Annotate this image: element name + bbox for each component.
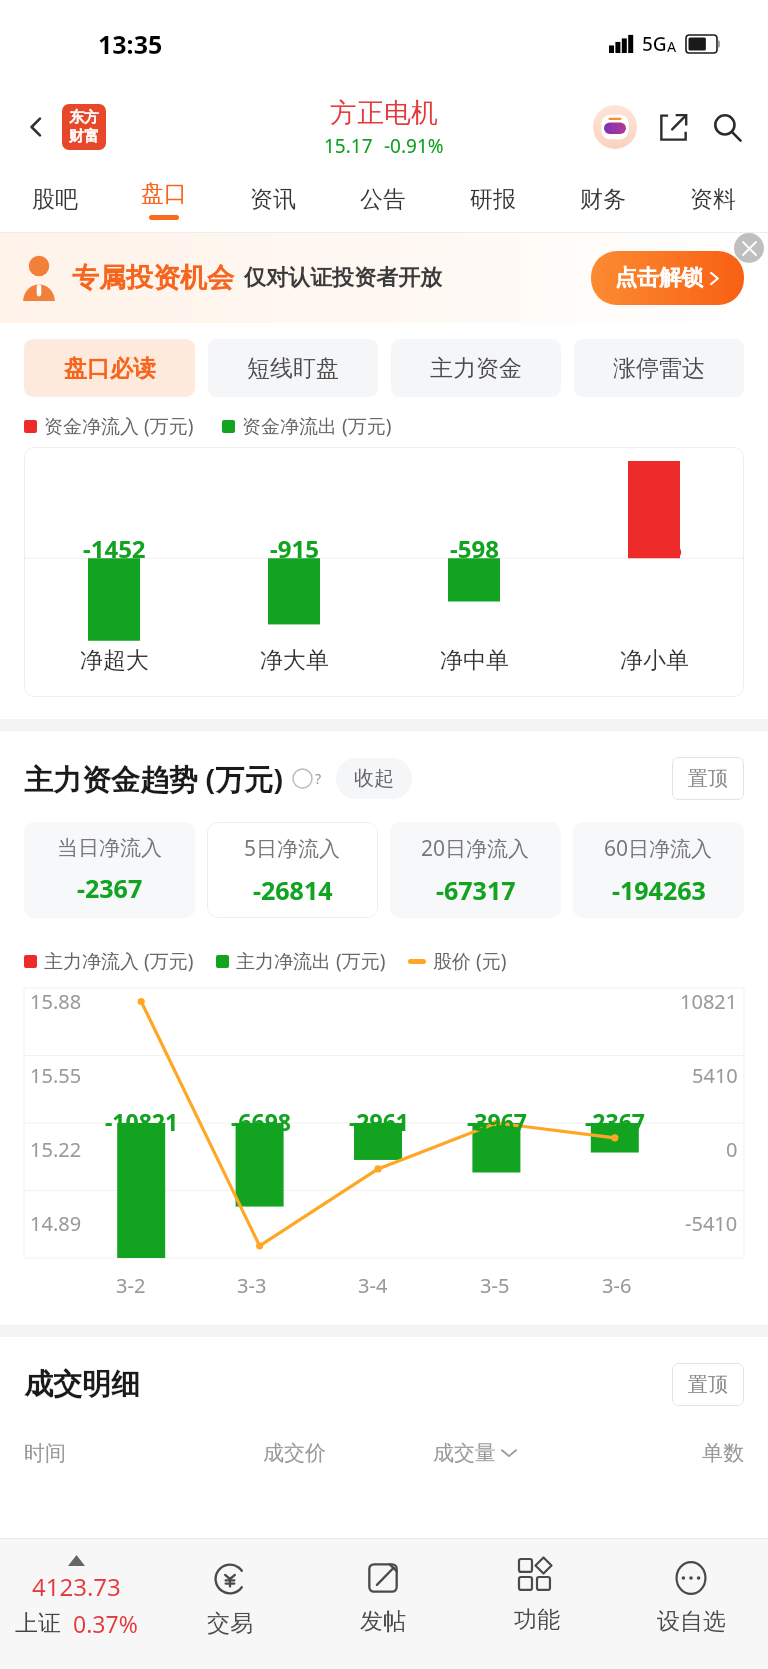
staticText: -2367 (77, 871, 143, 905)
staticText: 2966 (627, 532, 682, 565)
staticText: -26814 (253, 873, 333, 907)
staticText: 3-2 (116, 1272, 146, 1299)
staticText: 3-6 (602, 1272, 632, 1299)
staticText: 14.89 (30, 1210, 82, 1237)
button[interactable]: 点击解锁 (591, 251, 744, 305)
staticText: 上证 (15, 1609, 61, 1638)
staticText: 净超大 (80, 646, 149, 675)
staticText: 财富 (69, 127, 99, 146)
button[interactable]: East Money Home (62, 104, 106, 150)
staticText: 置顶 (688, 766, 728, 791)
button[interactable]: 置顶 (672, 1363, 744, 1406)
staticText: 发帖 (360, 1607, 406, 1636)
staticText: 成交量 (433, 1440, 496, 1466)
staticText: 功能 (514, 1605, 560, 1634)
staticText: 15.88 (30, 988, 82, 1015)
staticText: 净大单 (260, 646, 329, 675)
staticText: 成交价 (263, 1440, 326, 1466)
button[interactable]: 盘口必读 (24, 339, 195, 397)
staticText: -598 (450, 532, 499, 565)
button[interactable]: Back (14, 105, 58, 149)
staticText: -67317 (436, 873, 516, 907)
staticText: 交易 (207, 1609, 253, 1638)
button[interactable]: 置顶 (672, 757, 744, 800)
button[interactable]: 20日净流入 (390, 822, 561, 918)
button[interactable]: 设自选 (614, 1539, 768, 1669)
staticText: 收起 (354, 766, 394, 791)
staticText: 置顶 (688, 1372, 728, 1397)
button[interactable]: 财务 (548, 166, 658, 232)
staticText: -6698 (231, 1106, 291, 1137)
staticText: -5410 (685, 1210, 738, 1237)
staticText: 单数 (702, 1440, 744, 1466)
button[interactable]: 研报 (438, 166, 548, 232)
staticText: 设自选 (657, 1607, 726, 1636)
staticText: 15.55 (30, 1062, 82, 1089)
button[interactable]: 当日净流入 (24, 822, 195, 918)
button[interactable]: 交易 (153, 1539, 306, 1669)
staticText: 当日净流入 (57, 835, 162, 861)
button[interactable]: Close banner (734, 233, 764, 263)
staticText: 4123.73 (32, 1570, 121, 1603)
staticText: 主力资金 (430, 354, 522, 383)
staticText: 研报 (470, 185, 516, 214)
button[interactable]: 60日净流入 (573, 822, 744, 918)
button[interactable]: 发帖 (306, 1539, 460, 1669)
staticText: -3967 (467, 1106, 527, 1137)
staticText: 仅对认证投资者开放 (244, 264, 442, 292)
button[interactable]: 功能 (460, 1539, 614, 1669)
button[interactable]: 4123.73 (0, 1539, 153, 1669)
staticText: 财务 (580, 185, 626, 214)
staticText: 60日净流入 (604, 834, 713, 863)
staticText: 股吧 (32, 185, 78, 214)
staticText: 盘口 (141, 179, 187, 208)
staticText: 股价 (元) (433, 948, 507, 974)
staticText: 涨停雷达 (613, 354, 705, 383)
staticText: 主力净流出 (万元) (236, 948, 386, 974)
button[interactable]: 公告 (328, 166, 438, 232)
button[interactable]: 专属投资机会 (0, 233, 768, 323)
button[interactable]: 资料 (658, 166, 768, 232)
staticText: -0.91% (384, 133, 444, 159)
button[interactable]: 主力资金 (391, 339, 561, 397)
staticText: 5410 (692, 1062, 738, 1089)
button[interactable]: 短线盯盘 (208, 339, 378, 397)
staticText: 盘口必读 (64, 354, 156, 383)
staticText: -915 (270, 532, 319, 565)
button[interactable]: 收起 (336, 758, 412, 799)
button[interactable]: 资讯 (218, 166, 328, 232)
staticText: 15.22 (30, 1136, 82, 1163)
button[interactable]: AI Assistant (590, 102, 640, 152)
button[interactable]: 盘口 (109, 166, 218, 232)
staticText: 东方 (69, 108, 99, 127)
staticText: 0.37% (73, 1608, 138, 1639)
staticText: ? (315, 769, 322, 788)
staticText: 净中单 (440, 646, 509, 675)
staticText: 5G (642, 31, 667, 57)
button[interactable]: Share (650, 104, 696, 150)
button[interactable]: 股吧 (0, 166, 109, 232)
button[interactable]: -1452 (24, 447, 744, 697)
staticText: 20日净流入 (421, 834, 530, 863)
staticText: A (667, 37, 677, 56)
staticText: -2367 (585, 1106, 645, 1137)
staticText: 方正电机 (330, 96, 438, 130)
staticText: 资讯 (250, 185, 296, 214)
staticText: 资金净流出 (万元) (242, 413, 392, 439)
staticText: 时间 (24, 1440, 66, 1466)
staticText: 3-5 (480, 1272, 510, 1299)
staticText: 3-4 (358, 1272, 388, 1299)
staticText: 资金净流入 (万元) (44, 413, 194, 439)
staticText: 10821 (680, 988, 738, 1015)
staticText: 13:35 (98, 27, 163, 61)
staticText: 主力净流入 (万元) (44, 948, 194, 974)
button[interactable]: 5日净流入 (207, 822, 378, 918)
staticText: 资料 (690, 185, 736, 214)
staticText: 净小单 (620, 646, 689, 675)
staticText: 3-3 (237, 1272, 267, 1299)
button[interactable]: 涨停雷达 (574, 339, 744, 397)
staticText: -1452 (83, 532, 146, 565)
staticText: 15.17 (324, 133, 373, 159)
button[interactable]: Search (704, 104, 750, 150)
staticText: -10821 (105, 1106, 179, 1137)
